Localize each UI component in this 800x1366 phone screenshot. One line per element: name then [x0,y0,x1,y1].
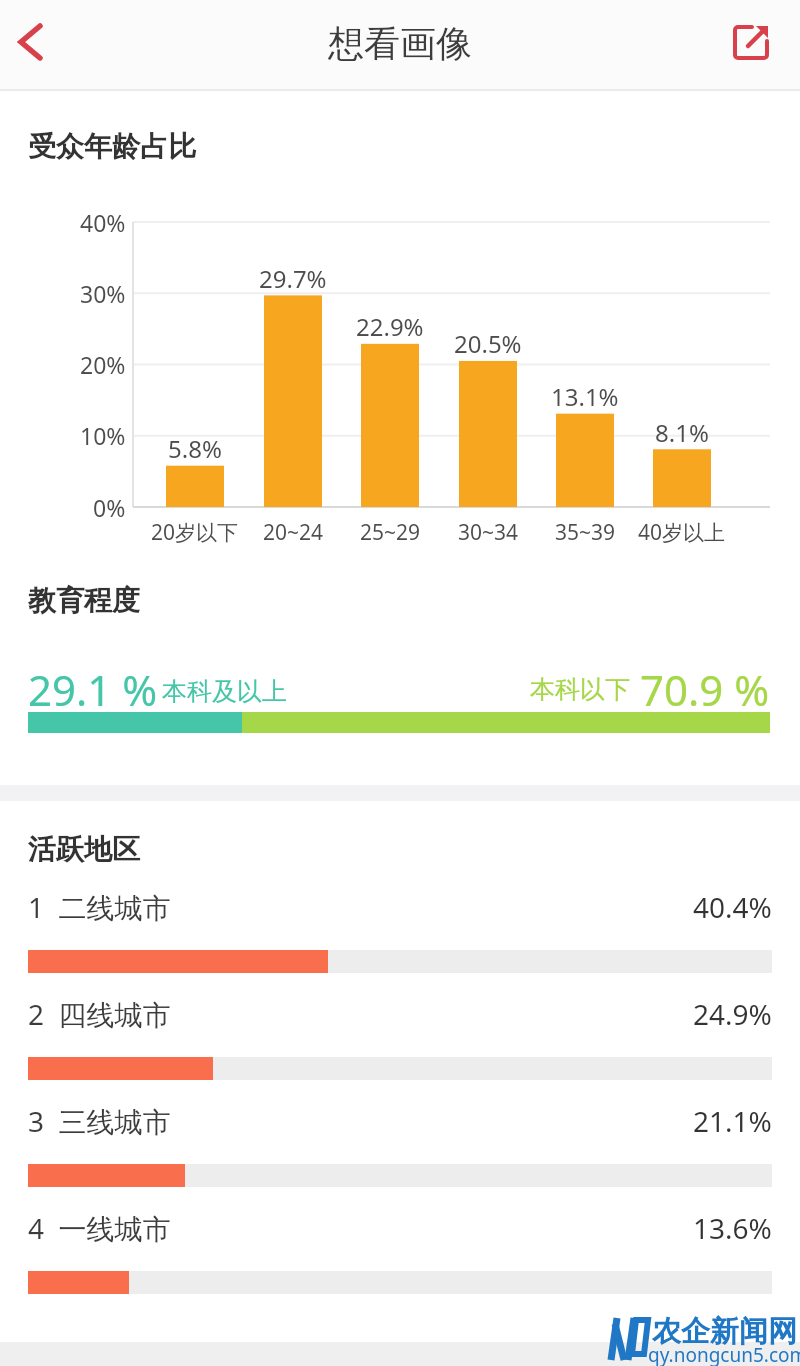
staticText: 25~29 [360,518,421,547]
staticText: 70.9 % [640,661,770,718]
staticText: 40.4% [693,888,772,926]
button[interactable] [28,1208,772,1248]
staticText: 想看画像 [328,21,472,61]
button[interactable] [28,1101,772,1141]
staticText: 30% [80,278,126,309]
staticText: 22.9% [356,310,424,343]
staticText: 10% [80,420,126,451]
staticText: 5.8% [168,432,222,465]
staticText: 29.7% [259,262,327,295]
staticText: 0% [93,492,126,523]
staticText: 13.1% [551,380,619,413]
staticText: 40% [80,207,126,238]
staticText: 20% [80,349,126,380]
staticText: 本科以下 [530,674,630,705]
staticText: 35~39 [555,518,616,547]
staticText: 8.1% [655,416,709,449]
button[interactable] [725,16,777,68]
staticText: 活跃地区 [28,832,140,867]
staticText: qy.nongcun5.com [648,1342,800,1366]
staticText: 20.5% [454,327,522,360]
staticText: 农企新闻网 [652,1313,797,1350]
button[interactable] [28,887,772,927]
staticText: 24.9% [693,995,772,1033]
staticText: 本科及以上 [162,676,287,707]
staticText: 教育程度 [28,583,140,618]
staticText: 20~24 [263,518,324,547]
staticText: 20岁以下 [151,518,239,547]
staticText: 30~34 [458,518,519,547]
staticText: 29.1 % [28,661,158,718]
staticText: 13.6% [693,1209,772,1247]
staticText: 2 四线城市 [28,995,171,1033]
staticText: 4 一线城市 [28,1209,171,1247]
button[interactable] [6,16,58,68]
staticText: 受众年龄占比 [28,129,196,164]
staticText: 40岁以上 [638,518,726,547]
staticText: 3 三线城市 [28,1102,171,1140]
staticText: 21.1% [693,1102,772,1140]
button[interactable] [28,994,772,1034]
staticText: 1 二线城市 [28,888,171,926]
